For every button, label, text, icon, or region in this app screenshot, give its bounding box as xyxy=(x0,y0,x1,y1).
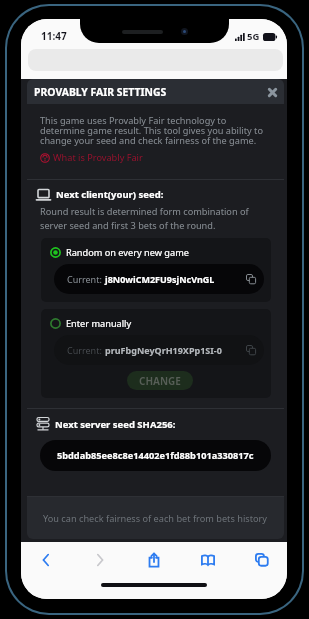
button[interactable]: Enter manually xyxy=(50,317,132,330)
staticText: Current: xyxy=(67,273,105,285)
staticText: Round result is determined form combinat… xyxy=(40,205,252,232)
button[interactable]: Random on every new game xyxy=(50,246,189,259)
button[interactable]: Close xyxy=(263,83,281,101)
staticText: 5G xyxy=(247,30,260,43)
staticText: CHANGE xyxy=(139,374,181,388)
button[interactable]: Copy xyxy=(244,272,258,286)
staticText: 11:47 xyxy=(41,29,67,43)
button[interactable]: Copy xyxy=(244,343,258,357)
button[interactable]: Tabs xyxy=(244,545,280,575)
button[interactable]: Share xyxy=(136,545,172,575)
staticText: PROVABLY FAIR SETTINGS xyxy=(34,85,167,99)
button[interactable]: Back xyxy=(28,545,64,575)
staticText: j8N0wiCM2FU9sjNcVnGL xyxy=(105,273,215,285)
staticText: Enter manually xyxy=(66,317,132,330)
staticText: Random on every new game xyxy=(66,246,189,259)
staticText: Next server seed SHA256: xyxy=(55,418,176,431)
staticText: This game uses Provably Fair technology … xyxy=(40,114,268,146)
staticText: Next client(your) seed: xyxy=(56,188,164,201)
staticText: pruFbgNeyQrH19XPp1SI-0 xyxy=(105,344,222,356)
staticText: 5bddab85ee8c8e14402e1fd88b101a330817c xyxy=(57,449,254,462)
staticText: You can check fairness of each bet from … xyxy=(43,512,268,525)
button[interactable]: What is Provably Fair xyxy=(40,151,143,164)
button[interactable]: Current: xyxy=(54,335,264,365)
staticText: Current: xyxy=(67,344,105,356)
button[interactable]: Current: xyxy=(54,264,264,294)
button[interactable]: CHANGE xyxy=(127,371,193,390)
button[interactable]: Bookmarks xyxy=(190,545,226,575)
staticText: What is Provably Fair xyxy=(53,151,143,164)
button[interactable]: Forward xyxy=(82,545,118,575)
